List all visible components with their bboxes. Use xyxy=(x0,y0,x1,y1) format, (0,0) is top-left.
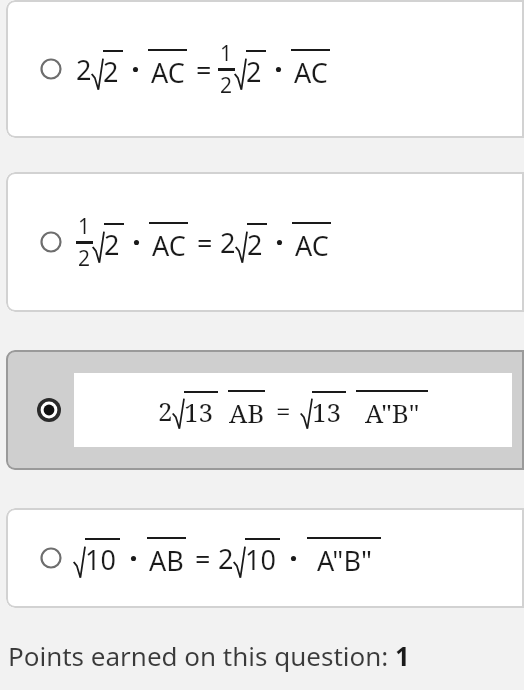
other: Unselected option xyxy=(40,231,62,253)
staticText: 2 xyxy=(104,226,120,263)
staticText: 2 xyxy=(220,71,233,100)
staticText: 2 xyxy=(246,53,262,90)
staticText: 1 xyxy=(78,212,91,241)
button[interactable]: Unselected option xyxy=(6,508,524,608)
staticText: 13 xyxy=(184,394,214,429)
staticText: AC xyxy=(295,227,329,264)
staticText: 2 xyxy=(103,53,119,90)
staticText: AB xyxy=(229,395,265,430)
staticText: 13 xyxy=(312,394,342,429)
staticText: AC xyxy=(294,54,328,91)
button[interactable]: Unselected option xyxy=(6,172,524,312)
button[interactable]: Selected option xyxy=(6,350,524,470)
button[interactable]: Unselected option xyxy=(6,0,524,138)
staticText: AC xyxy=(151,54,185,91)
staticText: = xyxy=(196,51,212,88)
other: Unselected option xyxy=(40,547,62,569)
staticText: Points earned on this question: 1 xyxy=(8,638,410,673)
staticText: = xyxy=(276,393,291,428)
staticText: 2 xyxy=(76,51,92,88)
staticText: 2 xyxy=(218,540,234,577)
other: Unselected option xyxy=(40,58,62,80)
staticText: 10 xyxy=(245,541,276,578)
staticText: AB xyxy=(149,542,184,579)
other: Selected option xyxy=(36,397,62,423)
staticText: 2 xyxy=(158,393,173,428)
staticText: = xyxy=(195,540,211,577)
staticText: AC xyxy=(152,227,186,264)
staticText: 2 xyxy=(78,244,91,273)
staticText: 1 xyxy=(220,39,233,68)
staticText: 2 xyxy=(247,226,263,263)
staticText: 2 xyxy=(220,224,236,261)
staticText: A"B" xyxy=(365,395,420,430)
staticText: = xyxy=(197,224,213,261)
staticText: A"B" xyxy=(317,542,372,579)
staticText: 10 xyxy=(85,541,116,578)
